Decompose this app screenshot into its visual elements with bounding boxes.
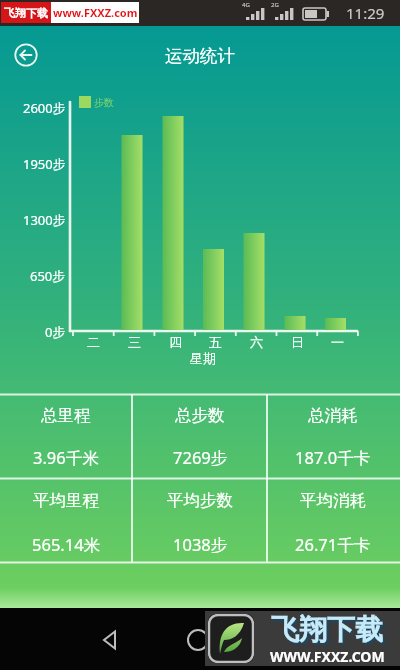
staticText: 2600步 [23, 99, 66, 115]
staticText: 运动统计 [165, 45, 235, 67]
staticText: 650步 [30, 267, 66, 283]
staticText: 总里程 [41, 405, 91, 425]
staticText: 平均消耗 [300, 490, 366, 510]
button[interactable] [178, 622, 218, 658]
staticText: 五 [209, 334, 222, 350]
staticText: 平均里程 [33, 490, 99, 510]
staticText: 11:29 [346, 3, 385, 23]
staticText: 7269步 [173, 446, 228, 466]
button[interactable] [12, 41, 40, 69]
staticText: 二 [87, 334, 100, 350]
staticText: 平均步数 [167, 490, 233, 510]
staticText: 4G [242, 1, 250, 9]
staticText: 总步数 [175, 405, 225, 425]
staticText: 26.71千卡 [295, 533, 371, 553]
staticText: 飞翔下载 [271, 612, 383, 647]
staticText: 星期 [190, 350, 216, 366]
staticText: 187.0千卡 [295, 446, 371, 466]
button[interactable]: 飞翔下载 [205, 611, 400, 666]
staticText: 三 [128, 334, 141, 350]
staticText: 1300步 [23, 211, 66, 227]
staticText: 总消耗 [308, 405, 358, 425]
staticText: 565.14米 [32, 533, 101, 553]
button[interactable] [90, 622, 130, 658]
staticText: 六 [250, 334, 263, 350]
staticText: 0步 [45, 323, 66, 339]
staticText: 一 [331, 334, 344, 350]
button[interactable]: 飞翔下载 [1, 2, 139, 23]
staticText: 1038步 [173, 533, 228, 553]
staticText: 步数 [94, 96, 114, 109]
staticText: 日 [291, 334, 304, 350]
staticText: 1950步 [23, 155, 66, 171]
staticText: WWW.FXXZ.COM [270, 647, 385, 666]
staticText: 四 [169, 334, 182, 350]
staticText: 2G [271, 1, 279, 9]
staticText: 飞翔下载 [4, 6, 48, 20]
staticText: www.FXXZ.com [53, 5, 138, 20]
staticText: 3.96千米 [33, 446, 99, 466]
